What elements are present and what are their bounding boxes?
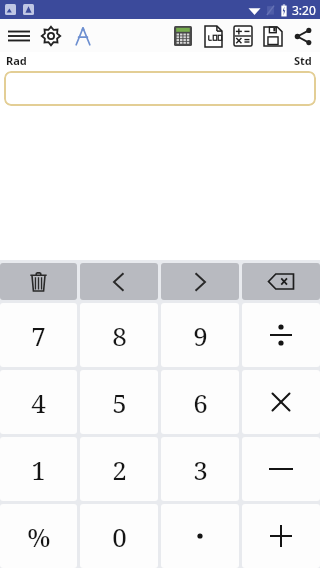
button[interactable]: 2 <box>80 437 158 501</box>
button[interactable]: 3 <box>161 437 239 501</box>
staticText: 7 <box>31 318 46 353</box>
button[interactable] <box>242 504 320 568</box>
button[interactable]: Move left <box>80 263 158 300</box>
button[interactable]: Calculator <box>168 21 198 51</box>
button[interactable]: Save <box>258 21 288 51</box>
button[interactable]: 7 <box>0 303 77 367</box>
button[interactable]: 0 <box>80 504 158 568</box>
button[interactable] <box>161 504 239 568</box>
staticText: 9 <box>193 318 208 353</box>
staticText: 0 <box>112 519 127 554</box>
button[interactable]: Menu <box>3 20 35 52</box>
button[interactable] <box>4 71 316 106</box>
staticText: 2 <box>112 452 127 487</box>
button[interactable]: Rad <box>6 53 27 68</box>
staticText: % <box>27 519 51 554</box>
button[interactable] <box>242 303 320 367</box>
staticText: Rad <box>6 53 27 68</box>
button[interactable]: 9 <box>161 303 239 367</box>
button[interactable]: Log <box>198 21 228 51</box>
button[interactable] <box>242 437 320 501</box>
staticText: 8 <box>112 318 127 353</box>
button[interactable]: 4 <box>0 370 77 434</box>
staticText: 3:20 <box>292 2 316 18</box>
button[interactable]: Operations <box>228 21 258 51</box>
button[interactable]: Geometry <box>67 20 99 52</box>
staticText: Std <box>294 53 312 68</box>
button[interactable]: Move right <box>161 263 239 300</box>
button[interactable] <box>242 370 320 434</box>
staticText: 4 <box>31 385 46 420</box>
staticText: 3 <box>193 452 208 487</box>
button[interactable]: 5 <box>80 370 158 434</box>
button[interactable]: Clear <box>0 263 77 300</box>
staticText: 5 <box>112 385 127 420</box>
button[interactable]: 1 <box>0 437 77 501</box>
staticText: 1 <box>31 452 46 487</box>
button[interactable]: 6 <box>161 370 239 434</box>
button[interactable]: Share <box>288 21 318 51</box>
button[interactable]: Std <box>294 53 312 68</box>
button[interactable]: % <box>0 504 77 568</box>
button[interactable]: 8 <box>80 303 158 367</box>
button[interactable]: Settings <box>35 20 67 52</box>
staticText: 6 <box>193 385 208 420</box>
button[interactable]: Backspace <box>242 263 320 300</box>
